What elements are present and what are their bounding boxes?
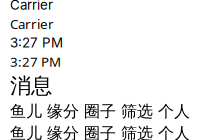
staticText: 3:27 PM <box>10 53 61 70</box>
staticText: 消息 <box>10 72 52 99</box>
staticText: 鱼儿 缘分 圈子 筛选 个人 <box>10 101 190 122</box>
staticText: Carrier <box>10 15 54 33</box>
staticText: 鱼儿 缘分 圈子 筛选 个人 <box>10 123 190 140</box>
staticText: 3:27 PM <box>10 35 63 51</box>
staticText: Carrier <box>10 0 53 13</box>
